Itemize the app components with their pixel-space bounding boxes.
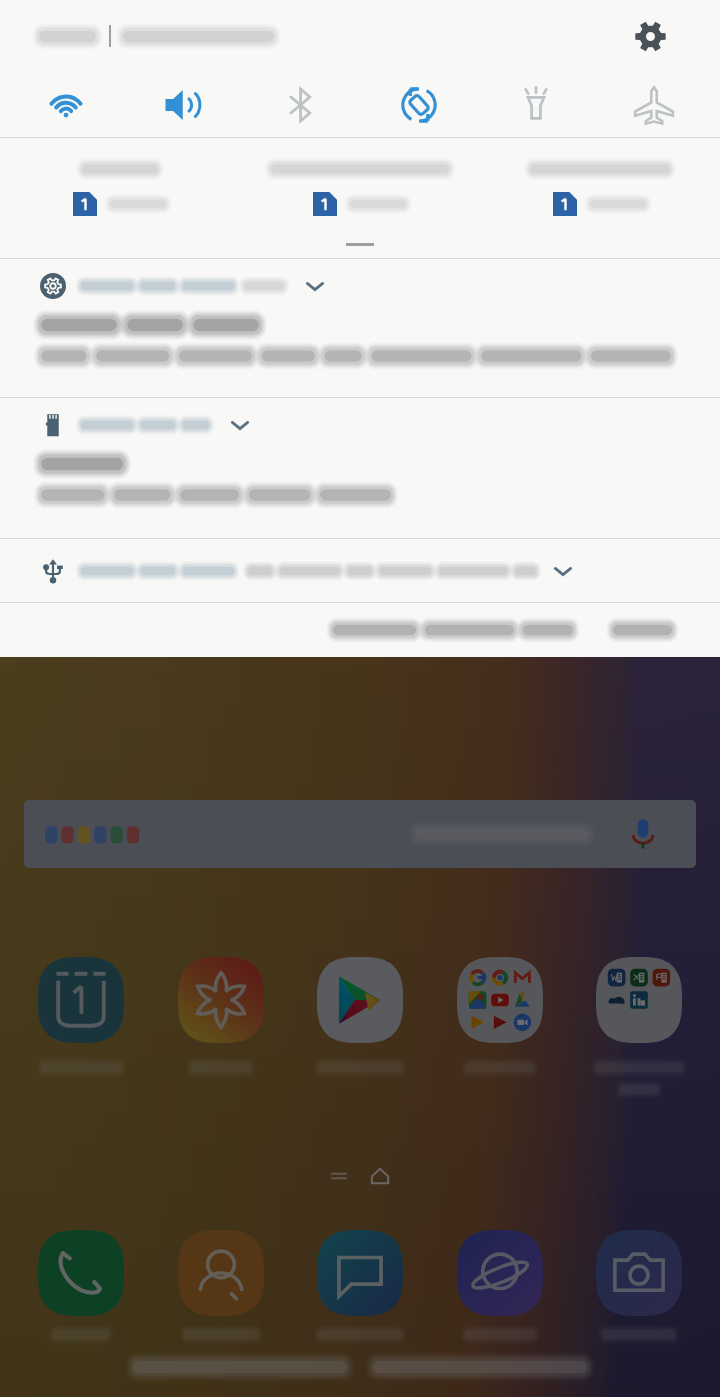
button[interactable]: Gallery [176, 955, 266, 1045]
button[interactable]: Airplane mode [619, 72, 689, 137]
button[interactable]: Sound [149, 72, 219, 137]
button[interactable]: Notification settings [316, 609, 590, 651]
button[interactable]: Internet [455, 1228, 545, 1318]
button[interactable]: Google search [24, 800, 696, 868]
button[interactable]: Bluetooth [266, 72, 336, 137]
button[interactable]: Contacts [176, 1228, 266, 1318]
button[interactable] [240, 138, 480, 216]
button[interactable]: Settings [624, 10, 676, 62]
button[interactable]: Flashlight [501, 72, 571, 137]
button[interactable]: Auto rotate [384, 72, 454, 137]
button[interactable] [0, 138, 240, 216]
button[interactable] [480, 138, 720, 216]
button[interactable] [0, 259, 720, 397]
button[interactable]: Camera [594, 1228, 684, 1318]
button[interactable]: Messages [315, 1228, 405, 1318]
button[interactable]: Google [455, 955, 545, 1045]
button[interactable] [0, 398, 720, 538]
button[interactable]: Calendar [36, 955, 126, 1045]
button[interactable]: Phone [36, 1228, 126, 1318]
button[interactable]: Wi-Fi [31, 72, 101, 137]
button[interactable]: Play Store [315, 955, 405, 1045]
button[interactable]: Microsoft [594, 955, 684, 1045]
button[interactable] [0, 539, 720, 602]
button[interactable]: Clear [596, 609, 689, 651]
